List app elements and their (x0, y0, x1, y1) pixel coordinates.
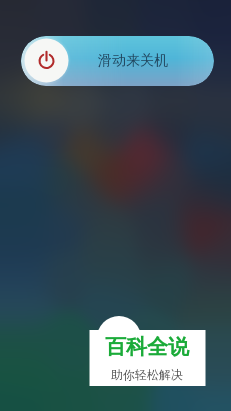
button[interactable]: 滑动来关机 (21, 36, 214, 86)
staticText: 助你轻松解决 (111, 367, 183, 382)
staticText: 百科全说 (105, 334, 189, 360)
staticText: 滑动来关机 (98, 52, 168, 70)
button[interactable]: Power off (22, 36, 71, 85)
